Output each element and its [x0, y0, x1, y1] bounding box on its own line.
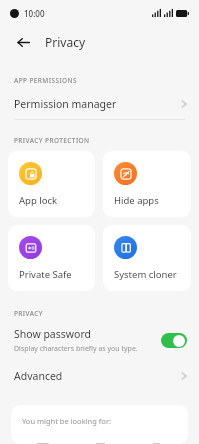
staticText: PRIVACY PROTECTION [14, 136, 90, 145]
staticText: Private Safe [19, 268, 72, 281]
button[interactable]: System cloner [103, 225, 191, 291]
button[interactable]: Permission manager [0, 89, 199, 119]
button[interactable]: Back [11, 30, 35, 54]
staticText: PRIVACY [14, 309, 43, 318]
staticText: System cloner [114, 268, 177, 281]
button[interactable]: Advanced [0, 361, 199, 391]
staticText: Show password [14, 327, 91, 341]
button[interactable]: Private Safe [8, 225, 95, 291]
staticText: Permission manager [14, 97, 117, 111]
staticText: Display characters briefly as you type. [14, 344, 138, 354]
staticText: You might be looking for: [22, 416, 112, 426]
button[interactable]: Show password toggle [161, 333, 187, 348]
staticText: Hide apps [114, 194, 159, 207]
button[interactable]: Show password [0, 322, 199, 361]
button[interactable]: App lock [8, 151, 95, 217]
staticText: App lock [19, 194, 58, 207]
button[interactable]: You might be looking for: [11, 405, 188, 444]
staticText: 10:00 [24, 8, 45, 19]
staticText: Advanced [14, 369, 63, 383]
button[interactable]: Hide apps [103, 151, 191, 217]
staticText: APP PERMISSIONS [14, 76, 78, 85]
staticText: Privacy [45, 34, 86, 50]
